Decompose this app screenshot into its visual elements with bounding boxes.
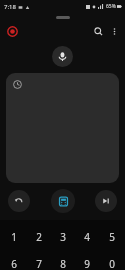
- staticText: 8: [60, 257, 66, 270]
- button[interactable]: 5: [101, 230, 122, 244]
- staticText: 3: [60, 230, 66, 244]
- button[interactable]: 9: [76, 257, 97, 270]
- button[interactable]: History: [6, 73, 119, 183]
- staticText: 4: [84, 230, 90, 244]
- button[interactable]: 7: [28, 257, 49, 270]
- button[interactable]: Next: [95, 190, 117, 212]
- button[interactable]: 3: [52, 230, 73, 244]
- staticText: 0: [109, 257, 115, 270]
- staticText: 7: [36, 257, 42, 270]
- staticText: 7:18: [4, 3, 16, 11]
- button[interactable]: Undo: [8, 190, 30, 212]
- button[interactable]: 4: [76, 230, 97, 244]
- staticText: 9: [84, 257, 90, 270]
- button[interactable]: 6: [3, 257, 24, 270]
- button[interactable]: History: [12, 79, 23, 90]
- staticText: 5: [109, 230, 115, 244]
- button[interactable]: Voice input: [52, 46, 73, 67]
- staticText: 6: [11, 257, 17, 270]
- button[interactable]: 8: [52, 257, 73, 270]
- button[interactable]: Search: [90, 23, 106, 39]
- button[interactable]: 2: [28, 230, 49, 244]
- button[interactable]: More options: [106, 23, 122, 39]
- button[interactable]: Calculate: [51, 189, 75, 213]
- staticText: 65%: [106, 3, 116, 10]
- button[interactable]: 1: [3, 230, 24, 244]
- staticText: 2: [36, 230, 42, 244]
- staticText: 1: [11, 230, 17, 244]
- button[interactable]: 0: [101, 257, 122, 270]
- button[interactable]: Record: [5, 24, 20, 39]
